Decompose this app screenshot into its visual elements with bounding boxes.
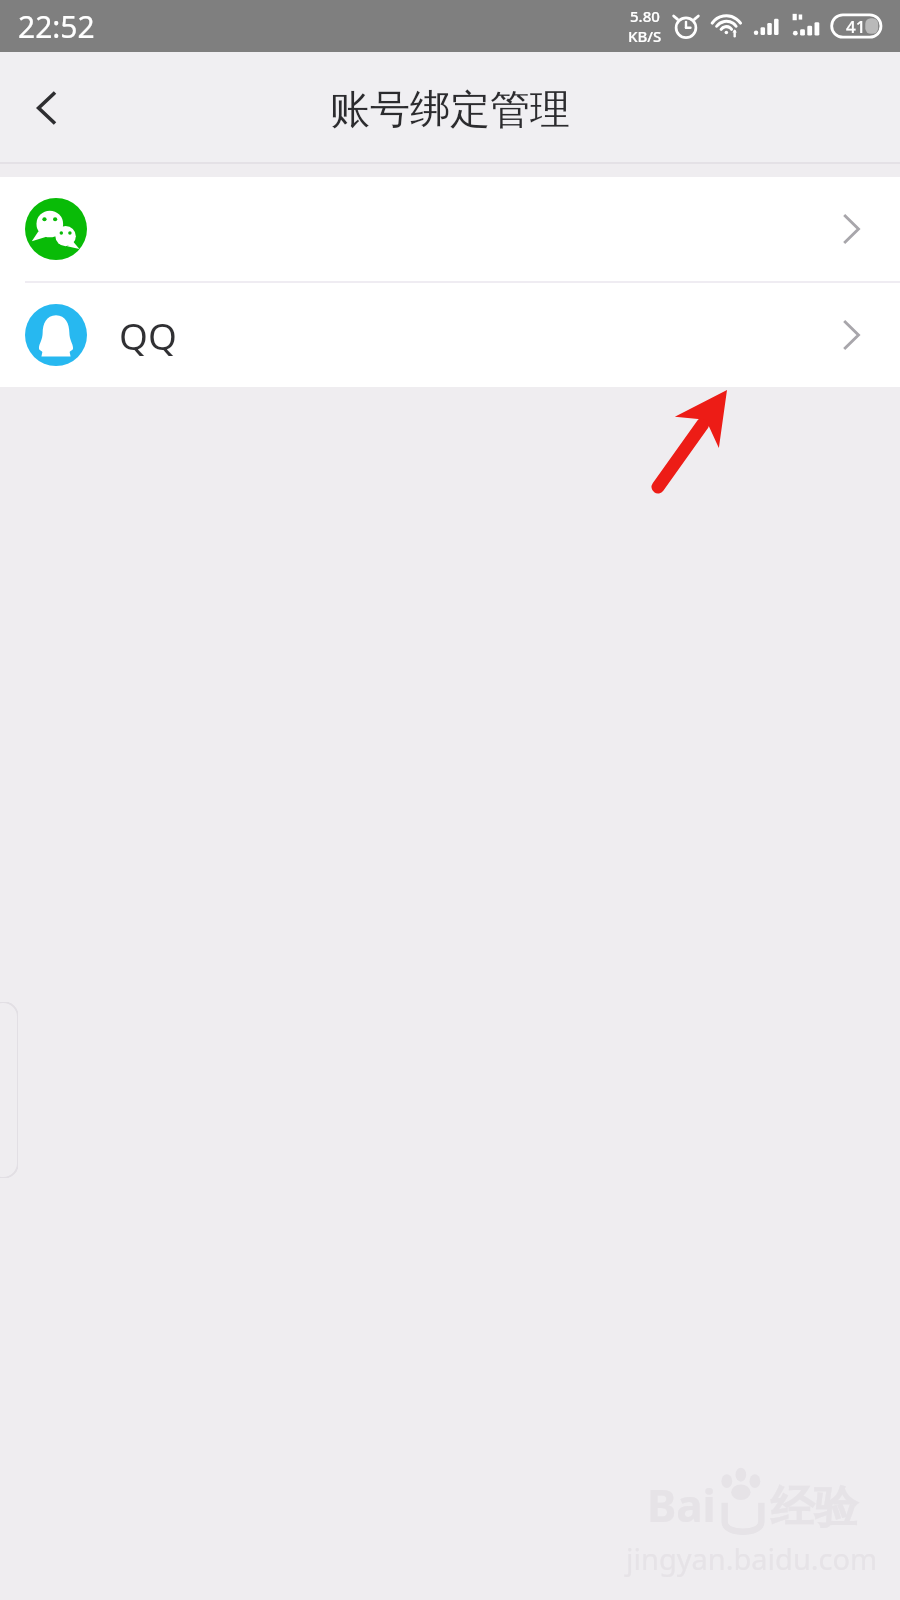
staticText: 账号绑定管理 <box>330 84 570 134</box>
staticText: 41 <box>846 15 866 38</box>
staticText: jingyan.baidu.com <box>626 1539 878 1578</box>
staticText: 经验 <box>770 1480 858 1535</box>
staticText: Bai <box>647 1475 716 1535</box>
staticText: QQ <box>119 310 177 360</box>
staticText: 5.80 <box>630 6 660 26</box>
button[interactable]: Back <box>8 69 86 147</box>
staticText: 22:52 <box>18 6 95 47</box>
button[interactable] <box>0 177 900 281</box>
button[interactable]: QQ <box>0 283 900 387</box>
staticText: KB/S <box>628 26 662 46</box>
